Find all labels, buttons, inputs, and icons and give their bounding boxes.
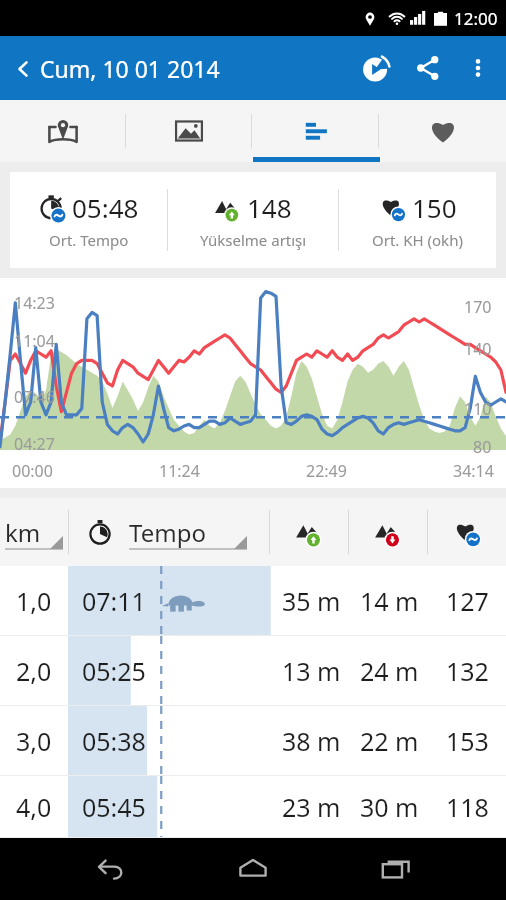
button[interactable]: Back — [6, 53, 226, 84]
button[interactable]: Back — [79, 838, 143, 900]
button[interactable]: Share — [402, 42, 454, 94]
button[interactable]: 4,0 — [0, 776, 506, 838]
button[interactable]: Ascent — [270, 498, 348, 566]
other: Tab — [426, 114, 460, 148]
button[interactable]: Recent apps — [364, 838, 428, 900]
button[interactable]: 148 — [168, 172, 338, 268]
button[interactable]: Heart rate — [428, 498, 506, 566]
staticText: 07:46 — [14, 386, 55, 408]
staticText: 127 — [446, 584, 489, 618]
button[interactable]: 1,0 — [0, 566, 506, 636]
staticText: Cum, 10 01 2014 — [40, 53, 220, 84]
other: Tab — [46, 114, 80, 148]
button[interactable]: Tab — [379, 100, 506, 162]
button[interactable]: Descent — [349, 498, 427, 566]
staticText: Tempo — [129, 516, 206, 549]
other: Pace — [87, 519, 113, 545]
staticText: 11:04 — [14, 330, 55, 352]
staticText: km — [5, 516, 41, 549]
staticText: 38 m — [282, 724, 341, 758]
staticText: 24 m — [360, 654, 419, 688]
staticText: 23 m — [282, 790, 341, 824]
button[interactable]: 150 — [339, 172, 496, 268]
other: Descent — [374, 518, 402, 546]
staticText: Ort. KH (okh) — [372, 230, 463, 250]
button[interactable]: 2,0 — [0, 636, 506, 706]
button[interactable]: km — [0, 498, 68, 566]
button[interactable]: Tab — [126, 100, 252, 162]
staticText: 110 — [464, 398, 492, 420]
staticText: 140 — [464, 338, 492, 360]
button[interactable]: 3,0 — [0, 706, 506, 776]
button[interactable]: More options — [454, 44, 502, 92]
staticText: 22:49 — [306, 460, 347, 482]
staticText: 12:00 — [454, 7, 498, 30]
staticText: 30 m — [360, 790, 419, 824]
staticText: 13 m — [282, 654, 341, 688]
button[interactable]: Tab — [252, 100, 379, 162]
button[interactable]: Home — [221, 838, 285, 900]
other: Ascent — [295, 518, 323, 546]
staticText: 148 — [247, 190, 292, 225]
button[interactable]: 05:48 — [10, 172, 167, 268]
staticText: 153 — [446, 724, 489, 758]
staticText: Ort. Tempo — [49, 230, 129, 250]
other: Back — [12, 58, 34, 80]
staticText: 118 — [446, 790, 489, 824]
staticText: 3,0 — [16, 724, 52, 758]
button[interactable]: Tab — [0, 100, 126, 162]
staticText: 35 m — [282, 584, 341, 618]
staticText: 14:23 — [14, 292, 55, 314]
staticText: 05:25 — [82, 654, 146, 688]
other: Heart rate — [453, 518, 481, 546]
staticText: 00:00 — [12, 460, 53, 482]
staticText: 80 — [473, 436, 492, 458]
staticText: 1,0 — [16, 584, 52, 618]
staticText: Yükselme artışı — [200, 230, 307, 250]
staticText: 2,0 — [16, 654, 52, 688]
staticText: 150 — [412, 190, 457, 225]
staticText: 132 — [446, 654, 489, 688]
staticText: 170 — [464, 296, 492, 318]
button[interactable]: Pace — [69, 498, 269, 566]
staticText: 22 m — [360, 724, 419, 758]
staticText: 14 m — [360, 584, 419, 618]
staticText: 11:24 — [159, 460, 200, 482]
button[interactable]: Live tracking — [350, 42, 402, 94]
staticText: 34:14 — [453, 460, 494, 482]
staticText: 05:48 — [72, 190, 139, 225]
staticText: 07:11 — [82, 584, 146, 618]
other: Tab — [299, 114, 333, 148]
staticText: 04:27 — [14, 433, 55, 455]
staticText: 05:45 — [82, 790, 146, 824]
staticText: 4,0 — [16, 790, 52, 824]
staticText: 05:38 — [82, 724, 146, 758]
other: Tab — [172, 114, 206, 148]
